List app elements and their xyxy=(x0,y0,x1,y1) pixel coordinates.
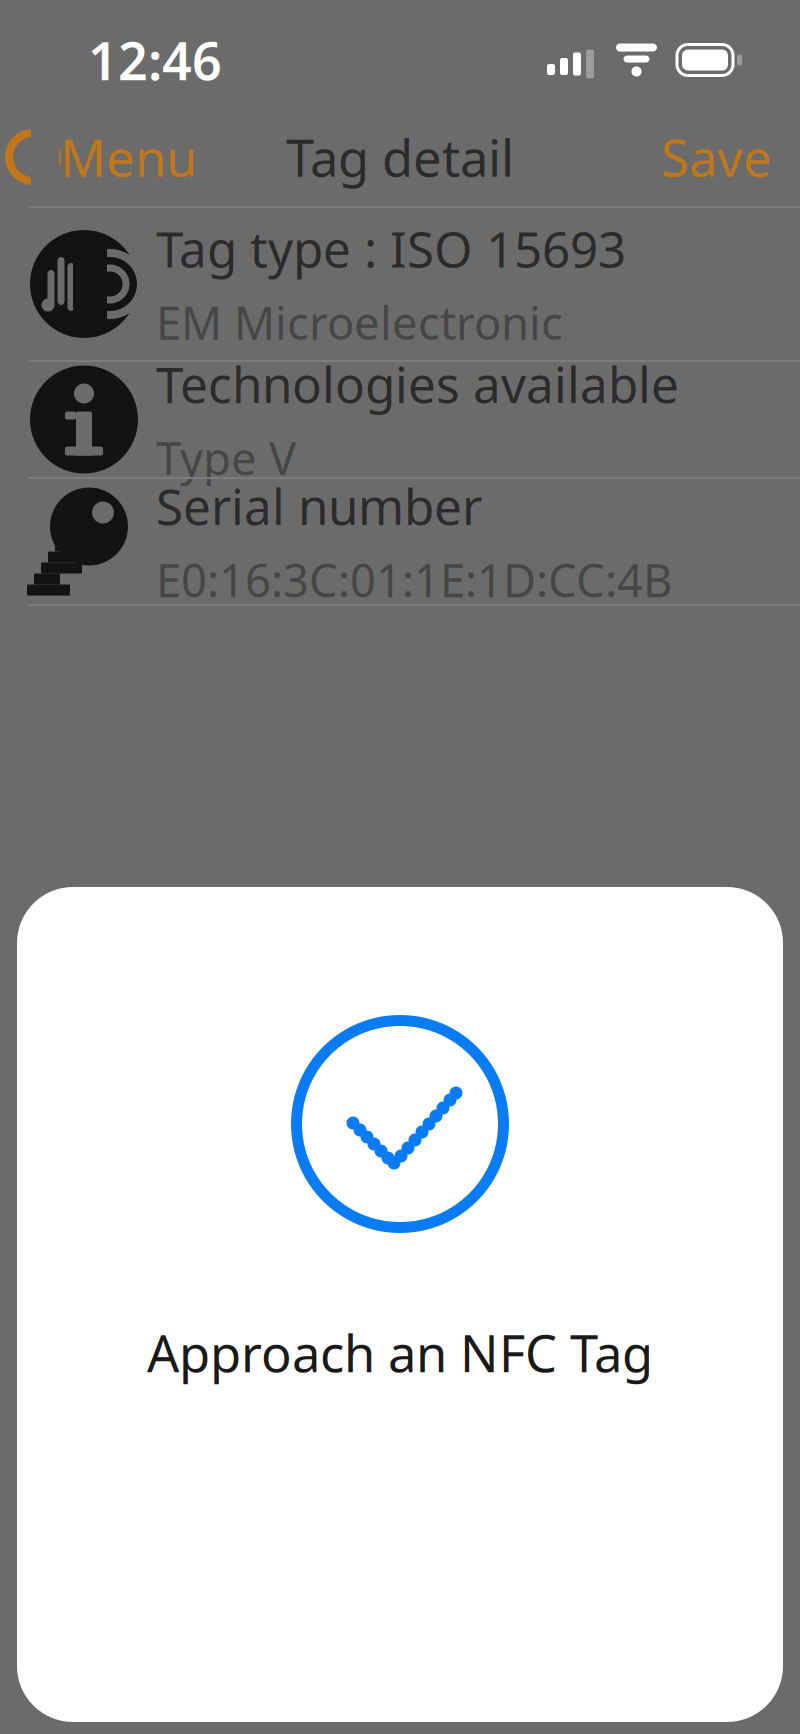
staticText: Serial number xyxy=(156,473,482,539)
staticText: Approach an NFC Tag xyxy=(147,1319,653,1386)
button[interactable]: Tag type : ISO 15693 xyxy=(0,208,800,360)
staticText: E0:16:3C:01:1E:1D:CC:4B xyxy=(156,550,672,610)
button[interactable]: Save xyxy=(633,107,800,207)
button[interactable]: Menu xyxy=(0,107,219,207)
staticText: Tag detail xyxy=(286,123,514,191)
staticText: Technologies available xyxy=(156,351,679,417)
staticText: Save xyxy=(661,123,772,191)
staticText: EM Microelectronic xyxy=(156,292,563,352)
staticText: 12:46 xyxy=(88,25,222,95)
staticText: Tag type : ISO 15693 xyxy=(156,216,626,281)
staticText: Type V xyxy=(156,428,296,488)
button[interactable]: Technologies available xyxy=(0,362,800,477)
button[interactable]: Serial number xyxy=(0,479,800,604)
staticText: Menu xyxy=(60,123,197,191)
